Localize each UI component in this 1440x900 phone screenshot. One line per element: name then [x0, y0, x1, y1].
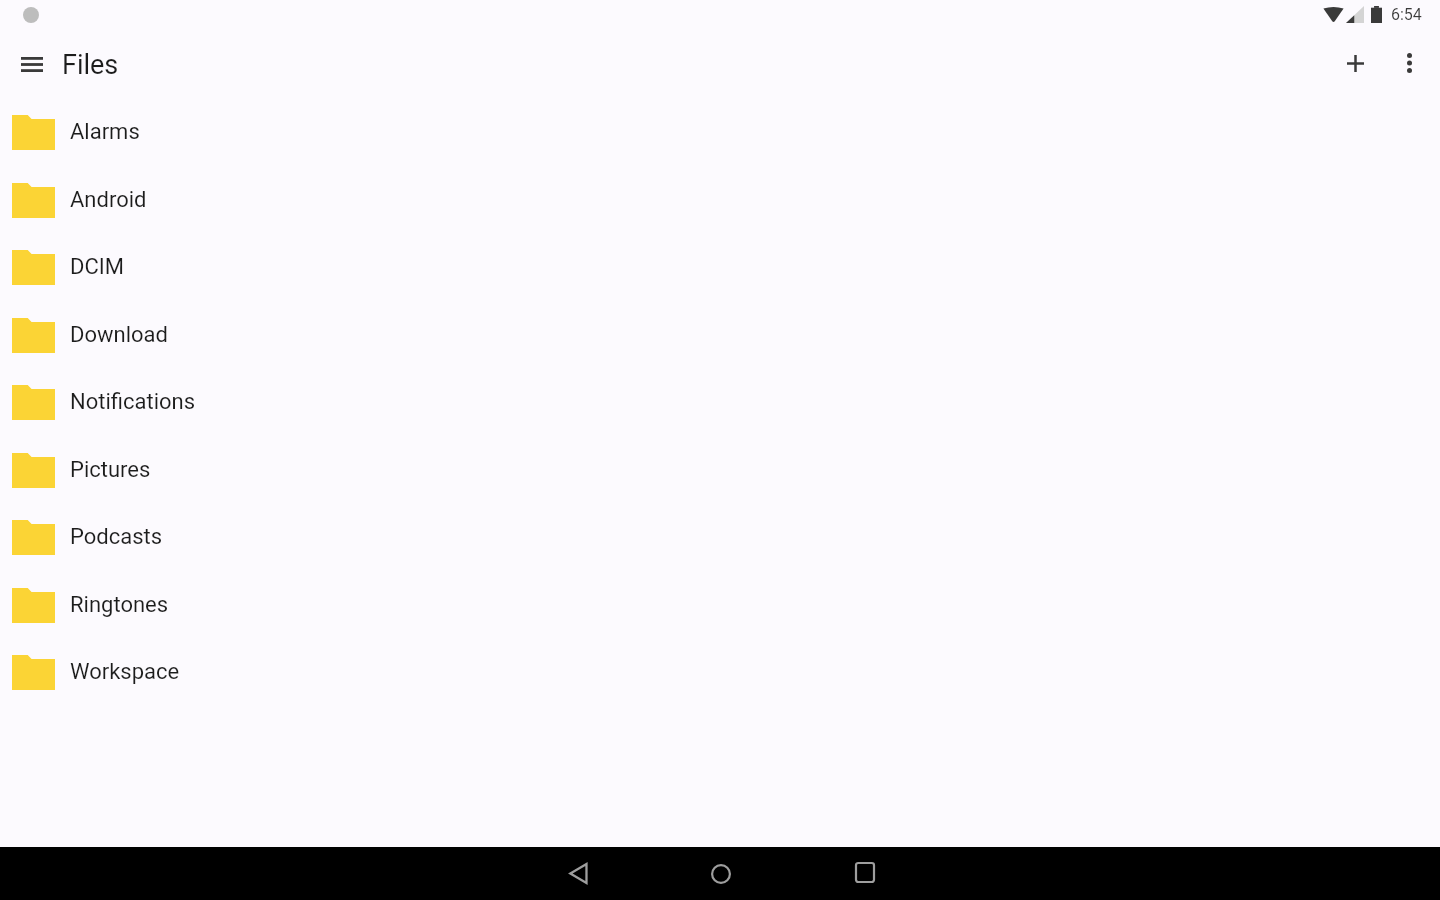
staticText: 6:54 [1391, 5, 1422, 24]
button[interactable]: Back [542, 849, 614, 897]
staticText: Workspace [70, 659, 180, 685]
button[interactable]: Download [0, 301, 1440, 369]
staticText: Android [70, 187, 147, 213]
button[interactable]: More options [1385, 39, 1433, 87]
staticText: Files [62, 49, 119, 81]
staticText: Ringtones [70, 592, 169, 618]
button[interactable]: Recent apps [829, 848, 901, 896]
staticText: Download [70, 322, 168, 348]
staticText: Notifications [70, 389, 196, 415]
button[interactable]: Workspace [0, 638, 1440, 706]
button[interactable]: Alarms [0, 98, 1440, 166]
button[interactable]: Add [1331, 39, 1379, 87]
button[interactable]: Pictures [0, 436, 1440, 504]
button[interactable]: Android [0, 166, 1440, 234]
button[interactable]: Notifications [0, 368, 1440, 436]
staticText: Pictures [70, 457, 151, 483]
button[interactable]: Open navigation menu [8, 38, 56, 86]
button[interactable]: Ringtones [0, 571, 1440, 639]
button[interactable]: Podcasts [0, 503, 1440, 571]
staticText: DCIM [70, 254, 124, 280]
button[interactable]: DCIM [0, 233, 1440, 301]
staticText: Alarms [70, 119, 140, 145]
staticText: Podcasts [70, 524, 163, 550]
button[interactable]: Home [685, 850, 757, 898]
